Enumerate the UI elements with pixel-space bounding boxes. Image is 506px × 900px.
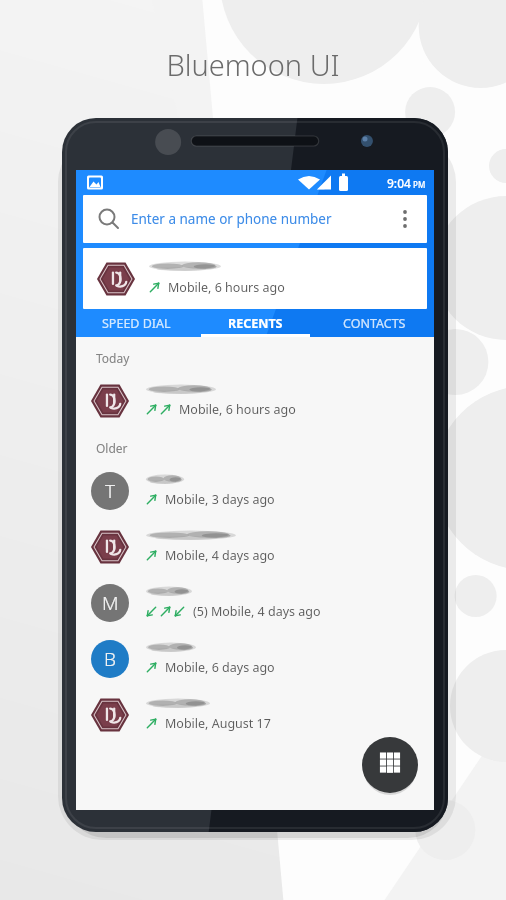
button[interactable]: Mobile, 6 hours ago [76,373,434,429]
staticText: Older [96,440,128,456]
staticText: Mobile, 6 days ago [165,659,275,676]
staticText: Mobile, 3 days ago [165,491,275,508]
button[interactable]: B [76,631,434,687]
staticText: RECENTS [228,315,283,332]
button[interactable]: Mobile, August 17 [76,687,434,743]
button[interactable]: Dialpad [362,737,418,793]
button[interactable]: Mobile, 6 hours ago [83,248,427,309]
staticText: Today [96,350,130,366]
button[interactable]: SPEED DIAL [76,309,196,337]
staticText: Enter a name or phone number [131,210,332,228]
button[interactable]: RECENTS [196,309,315,337]
staticText: Mobile, 4 days ago [165,547,275,564]
button[interactable]: CONTACTS [315,309,434,337]
button[interactable]: T [76,463,434,519]
staticText: M [102,590,119,616]
button[interactable]: Mobile, 4 days ago [76,519,434,575]
staticText: T [105,478,116,504]
staticText: Mobile, August 17 [165,715,271,732]
staticText: B [104,646,116,672]
staticText: SPEED DIAL [102,315,171,332]
staticText: Bluemoon UI [0,45,506,84]
staticText: Mobile, 6 hours ago [168,279,285,296]
staticText: 9:04 [387,175,411,191]
staticText: CONTACTS [343,315,406,332]
button[interactable]: M [76,575,434,631]
staticText: PM [413,179,426,190]
button[interactable]: Enter a name or phone number [83,195,427,243]
staticText: Mobile, 6 hours ago [179,401,296,418]
staticText: (5) Mobile, 4 days ago [193,603,321,620]
